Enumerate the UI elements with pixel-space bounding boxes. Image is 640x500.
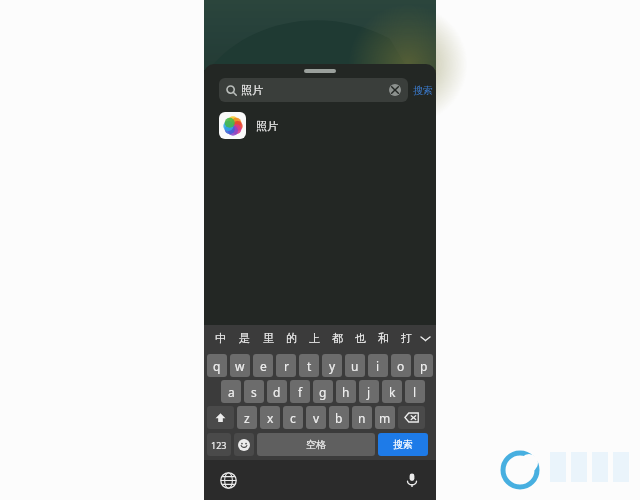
staticText: 是	[239, 331, 250, 345]
staticText: k	[389, 384, 396, 400]
staticText: g	[319, 384, 327, 400]
button[interactable]: l	[405, 380, 425, 403]
staticText: 的	[286, 331, 297, 345]
button[interactable]: o	[391, 354, 411, 377]
button[interactable]: 123	[207, 433, 231, 456]
staticText: 搜索	[413, 84, 433, 97]
button[interactable]: f	[290, 380, 310, 403]
staticText: a	[228, 384, 235, 400]
button[interactable]: p	[414, 354, 433, 377]
staticText: x	[267, 410, 274, 426]
button[interactable]: 上	[303, 325, 326, 351]
button[interactable]: 照片	[219, 78, 408, 102]
button[interactable]: h	[336, 380, 356, 403]
button[interactable]: 展开	[418, 325, 432, 351]
button[interactable]: 也	[349, 325, 372, 351]
button[interactable]: k	[382, 380, 402, 403]
staticText: d	[273, 384, 281, 400]
button[interactable]: t	[299, 354, 319, 377]
staticText: j	[367, 384, 371, 400]
staticText: v	[313, 410, 320, 426]
staticText: m	[379, 410, 391, 426]
staticText: 照片	[241, 83, 263, 97]
staticText: 123	[211, 439, 227, 451]
button[interactable]: 语音输入	[402, 470, 422, 490]
staticText: f	[298, 384, 303, 400]
button[interactable]: n	[352, 406, 372, 429]
staticText: i	[376, 358, 380, 374]
button[interactable]: d	[267, 380, 287, 403]
button[interactable]: 空格	[257, 433, 375, 456]
staticText: u	[351, 358, 359, 374]
button[interactable]: b	[329, 406, 349, 429]
button[interactable]: 切换输入法	[218, 470, 238, 490]
staticText: 上	[309, 331, 320, 345]
button[interactable]: g	[313, 380, 333, 403]
staticText: 空格	[306, 438, 326, 451]
button[interactable]: 搜索	[408, 84, 434, 97]
staticText: q	[213, 358, 221, 374]
button[interactable]: i	[368, 354, 388, 377]
staticText: s	[251, 384, 257, 400]
button[interactable]: key	[398, 406, 425, 429]
button[interactable]: 是	[232, 325, 256, 351]
staticText: p	[420, 358, 428, 374]
button[interactable]: z	[237, 406, 257, 429]
staticText: 照片	[256, 119, 278, 133]
staticText: y	[329, 358, 336, 374]
button[interactable]: y	[322, 354, 342, 377]
staticText: c	[290, 410, 296, 426]
button[interactable]: 中	[208, 325, 232, 351]
staticText: 和	[378, 331, 389, 345]
staticText: e	[260, 358, 267, 374]
button[interactable]: key	[207, 406, 234, 429]
staticText: t	[307, 358, 312, 374]
button[interactable]: a	[221, 380, 241, 403]
button[interactable]: key	[234, 433, 254, 456]
staticText: b	[335, 410, 343, 426]
staticText: w	[235, 358, 245, 374]
button[interactable]: 和	[372, 325, 395, 351]
staticText: h	[342, 384, 350, 400]
button[interactable]: e	[253, 354, 273, 377]
staticText: 也	[355, 331, 366, 345]
staticText: 中	[215, 331, 226, 345]
button[interactable]: q	[207, 354, 227, 377]
staticText: 搜索	[393, 438, 413, 451]
staticText: 都	[332, 331, 343, 345]
button[interactable]: 照片	[219, 112, 436, 139]
staticText: 打	[401, 331, 412, 345]
button[interactable]: 搜索	[378, 433, 428, 456]
button[interactable]: r	[276, 354, 296, 377]
staticText: l	[413, 384, 417, 400]
staticText: n	[358, 410, 366, 426]
button[interactable]: c	[283, 406, 303, 429]
button[interactable]: 的	[280, 325, 303, 351]
staticText: r	[284, 358, 289, 374]
button[interactable]: 打	[395, 325, 418, 351]
staticText: 里	[263, 331, 274, 345]
button[interactable]: s	[244, 380, 264, 403]
button[interactable]: 里	[256, 325, 280, 351]
button[interactable]: 清除	[389, 84, 401, 96]
staticText: o	[397, 358, 405, 374]
button[interactable]: u	[345, 354, 365, 377]
button[interactable]: j	[359, 380, 379, 403]
button[interactable]: x	[260, 406, 280, 429]
button[interactable]: w	[230, 354, 250, 377]
button[interactable]: v	[306, 406, 326, 429]
staticText: z	[244, 410, 250, 426]
button[interactable]: m	[375, 406, 395, 429]
button[interactable]: 都	[326, 325, 349, 351]
